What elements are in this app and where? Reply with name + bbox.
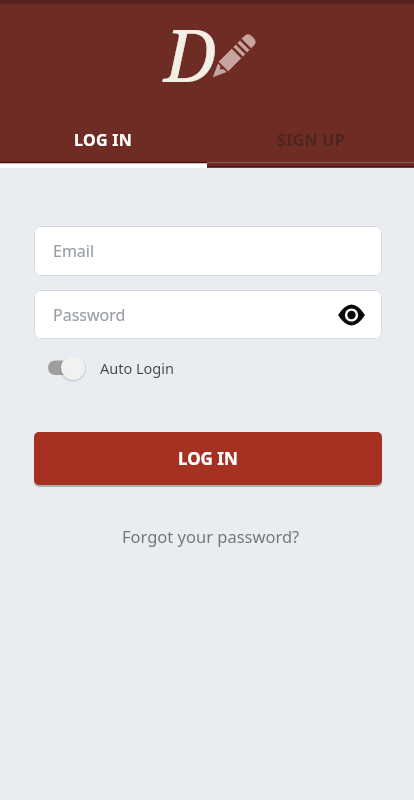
button[interactable]: SIGN UP [207,116,414,164]
staticText: D [164,4,217,103]
button[interactable]: LOG IN [0,116,207,164]
button[interactable]: Password [34,290,382,339]
staticText: LOG IN [74,129,133,151]
staticText: SIGN UP [277,129,345,151]
staticText: Password [53,304,126,326]
button[interactable]: Forgot your password? [0,521,414,551]
button[interactable]: LOG IN [34,432,382,485]
button[interactable]: Auto Login [48,353,174,383]
staticText: Email [53,240,95,262]
staticText: LOG IN [178,447,238,470]
button[interactable]: Email [34,226,382,276]
staticText: Auto Login [100,358,174,378]
staticText: Forgot your password? [122,525,300,547]
